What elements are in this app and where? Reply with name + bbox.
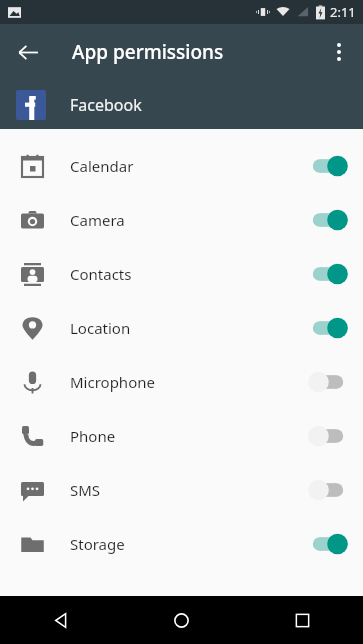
staticText: Microphone <box>70 372 155 392</box>
button[interactable]: Location <box>0 301 363 355</box>
button[interactable]: Camera permission toggle <box>297 193 359 247</box>
staticText: Phone <box>70 426 116 446</box>
button[interactable]: Contacts permission toggle <box>297 247 359 301</box>
button[interactable]: Microphone <box>0 355 363 409</box>
button[interactable]: Contacts <box>0 247 363 301</box>
staticText: Location <box>70 318 131 338</box>
staticText: SMS <box>70 480 101 500</box>
button[interactable]: Camera <box>0 193 363 247</box>
button[interactable]: Storage permission toggle <box>297 517 359 571</box>
button[interactable]: More options <box>319 32 359 72</box>
button[interactable]: Calendar permission toggle <box>297 139 359 193</box>
button[interactable]: Facebook <box>0 80 363 129</box>
staticText: 2:11 <box>330 3 356 21</box>
button[interactable]: Home <box>121 596 242 644</box>
button[interactable]: SMS permission toggle <box>297 463 359 517</box>
staticText: App permissions <box>72 39 224 65</box>
button[interactable]: Location permission toggle <box>297 301 359 355</box>
button[interactable]: Phone <box>0 409 363 463</box>
button[interactable]: Back <box>0 596 121 644</box>
button[interactable]: Storage <box>0 517 363 571</box>
button[interactable]: SMS <box>0 463 363 517</box>
button[interactable]: Calendar <box>0 139 363 193</box>
button[interactable]: Recent apps <box>242 596 363 644</box>
staticText: Facebook <box>70 94 142 116</box>
staticText: Camera <box>70 210 125 230</box>
staticText: Storage <box>70 534 125 554</box>
button[interactable]: Back <box>8 32 48 72</box>
button[interactable]: Microphone permission toggle <box>297 355 359 409</box>
staticText: Contacts <box>70 264 132 284</box>
button[interactable]: Phone permission toggle <box>297 409 359 463</box>
staticText: Calendar <box>70 156 134 176</box>
